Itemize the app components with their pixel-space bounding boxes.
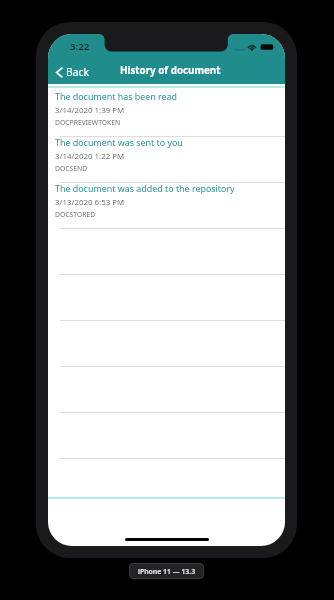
staticText: The document was added to the repository bbox=[55, 182, 235, 194]
staticText: 3/14/2020 1:39 PM bbox=[55, 105, 125, 116]
staticText: 3/14/2020 1:22 PM bbox=[55, 151, 125, 162]
staticText: 3/13/2020 6:53 PM bbox=[55, 197, 125, 208]
staticText: History of document bbox=[120, 64, 221, 77]
button[interactable]: Back bbox=[55, 63, 90, 81]
staticText: The document has been read bbox=[55, 91, 178, 102]
staticText: DOCPREVIEWTOKEN bbox=[55, 118, 121, 127]
button[interactable]: The document was sent to you bbox=[48, 137, 285, 183]
button[interactable]: The document was added to the repository bbox=[48, 183, 285, 229]
staticText: DOCSEND bbox=[55, 164, 88, 173]
staticText: DOCSTORED bbox=[55, 210, 96, 219]
staticText: iPhone 11 — 13.3 bbox=[138, 567, 196, 576]
button[interactable]: The document has been read bbox=[48, 91, 285, 137]
staticText: The document was sent to you bbox=[55, 136, 183, 148]
staticText: 3:22 bbox=[70, 40, 90, 53]
button[interactable]: iPhone 11 — 13.3 bbox=[130, 564, 203, 578]
staticText: Back bbox=[66, 65, 89, 79]
